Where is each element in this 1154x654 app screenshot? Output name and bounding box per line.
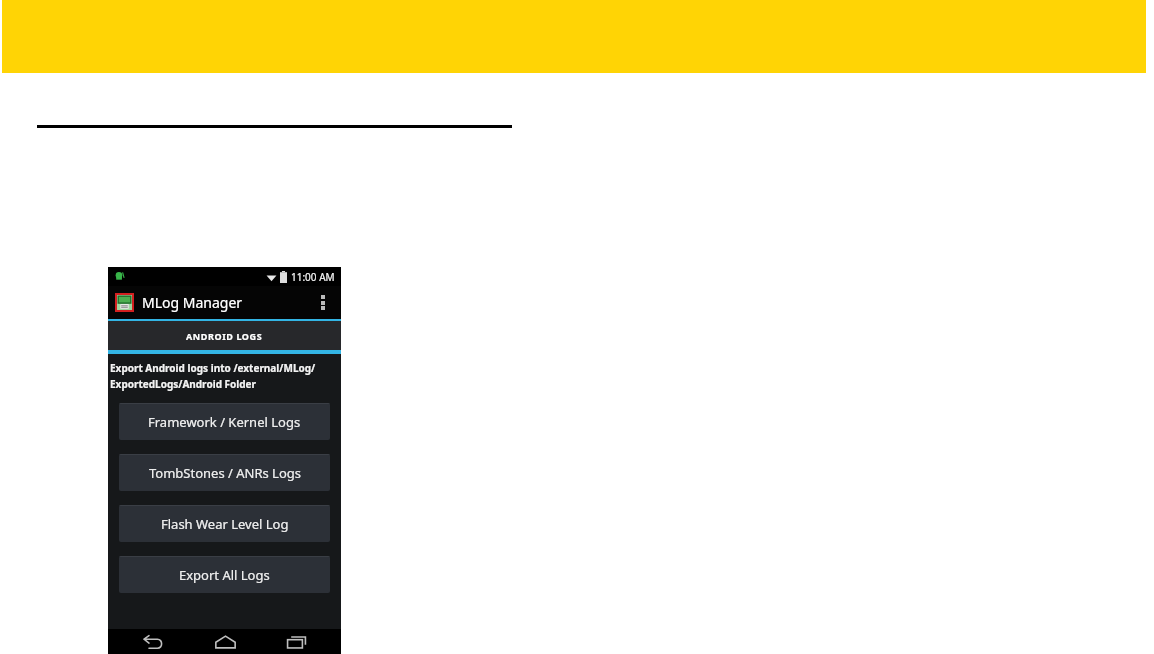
staticText: Framework / Kernel Logs xyxy=(148,413,301,431)
button[interactable]: More options xyxy=(312,286,334,319)
staticText: Flash Wear Level Log xyxy=(161,515,289,533)
button[interactable]: Export All Logs xyxy=(119,556,330,593)
staticText: 11:00 AM xyxy=(291,270,335,284)
button[interactable]: Recent apps xyxy=(270,629,322,654)
staticText: ExportedLogs/Android Folder xyxy=(110,377,257,391)
staticText: Export Android logs into /external/MLog/ xyxy=(110,361,316,375)
button[interactable]: TombStones / ANRs Logs xyxy=(119,454,330,491)
button[interactable]: ANDROID LOGS xyxy=(108,321,341,350)
staticText: Export All Logs xyxy=(179,566,270,584)
staticText: ANDROID LOGS xyxy=(186,330,263,342)
button[interactable]: Back xyxy=(127,629,179,654)
staticText: TombStones / ANRs Logs xyxy=(149,464,301,482)
button[interactable]: Framework / Kernel Logs xyxy=(119,403,330,440)
button[interactable]: Home xyxy=(199,629,251,654)
staticText: MLog Manager xyxy=(142,293,243,312)
button[interactable]: Flash Wear Level Log xyxy=(119,505,330,542)
